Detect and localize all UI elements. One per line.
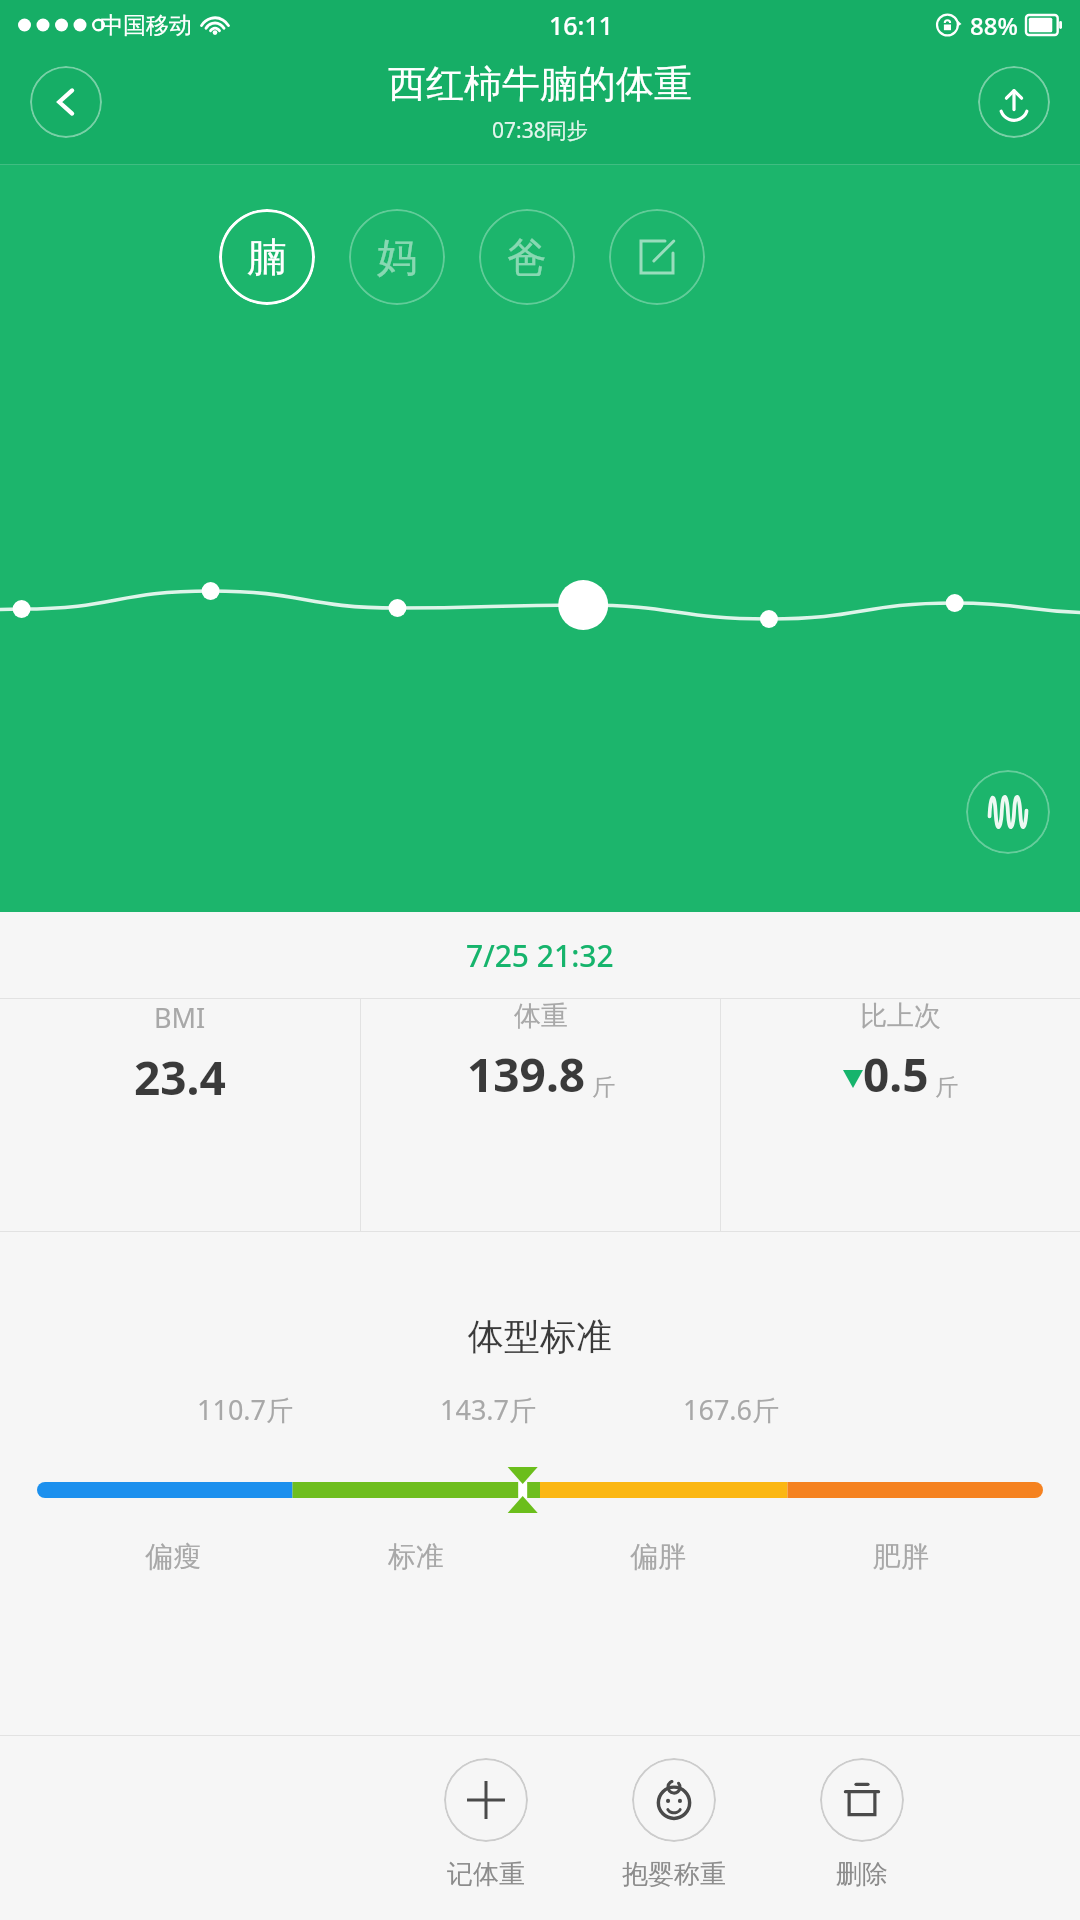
staticText: 记体重 — [447, 1858, 525, 1891]
staticText: 中国移动 — [100, 11, 192, 40]
staticText: 110.7斤 — [197, 1391, 294, 1428]
staticText: 体重 — [514, 999, 568, 1033]
staticText: 23.4 — [134, 1046, 226, 1109]
staticText: 07:38同步 — [492, 116, 588, 145]
staticText: 167.6斤 — [683, 1391, 780, 1428]
staticText: 妈 — [377, 232, 417, 282]
button[interactable]: Edit members — [609, 209, 705, 305]
staticText: 偏瘦 — [145, 1539, 201, 1574]
staticText: 斤 — [935, 1073, 958, 1102]
button[interactable]: Delete — [794, 1758, 930, 1891]
button[interactable]: Weigh baby — [606, 1758, 742, 1891]
staticText: 16:11 — [549, 8, 614, 42]
staticText: 爸 — [507, 232, 547, 282]
staticText: 腩 — [247, 232, 287, 282]
staticText: 7/25 21:32 — [466, 935, 614, 976]
staticText: 143.7斤 — [440, 1391, 537, 1428]
staticText: 比上次 — [860, 999, 941, 1033]
button[interactable]: BMI — [0, 999, 360, 1109]
staticText: 偏胖 — [630, 1539, 686, 1574]
button[interactable]: 体重 — [361, 999, 720, 1106]
button[interactable]: Share — [978, 66, 1050, 138]
button[interactable]: Back — [30, 66, 102, 138]
staticText: 删除 — [836, 1858, 888, 1891]
button[interactable]: Add weight — [418, 1758, 554, 1891]
staticText: BMI — [154, 999, 206, 1036]
button[interactable]: 爸 — [479, 209, 575, 305]
button[interactable]: Body composition — [966, 770, 1050, 854]
button[interactable]: 腩 — [219, 209, 315, 305]
staticText: 体型标准 — [468, 1314, 612, 1359]
staticText: 标准 — [388, 1539, 444, 1574]
button[interactable]: 比上次 — [721, 999, 1080, 1106]
button[interactable]: 妈 — [349, 209, 445, 305]
other: Delete — [820, 1758, 904, 1842]
staticText: 抱婴称重 — [622, 1858, 726, 1891]
other: Add weight — [444, 1758, 528, 1842]
staticText: 西红柿牛腩的体重 — [388, 60, 692, 108]
staticText: 88% — [970, 9, 1018, 42]
staticText: 0.5 — [863, 1043, 929, 1106]
staticText: 斤 — [592, 1073, 615, 1102]
staticText: 肥胖 — [873, 1539, 929, 1574]
other: Weigh baby — [632, 1758, 716, 1842]
staticText: 139.8 — [467, 1043, 586, 1106]
